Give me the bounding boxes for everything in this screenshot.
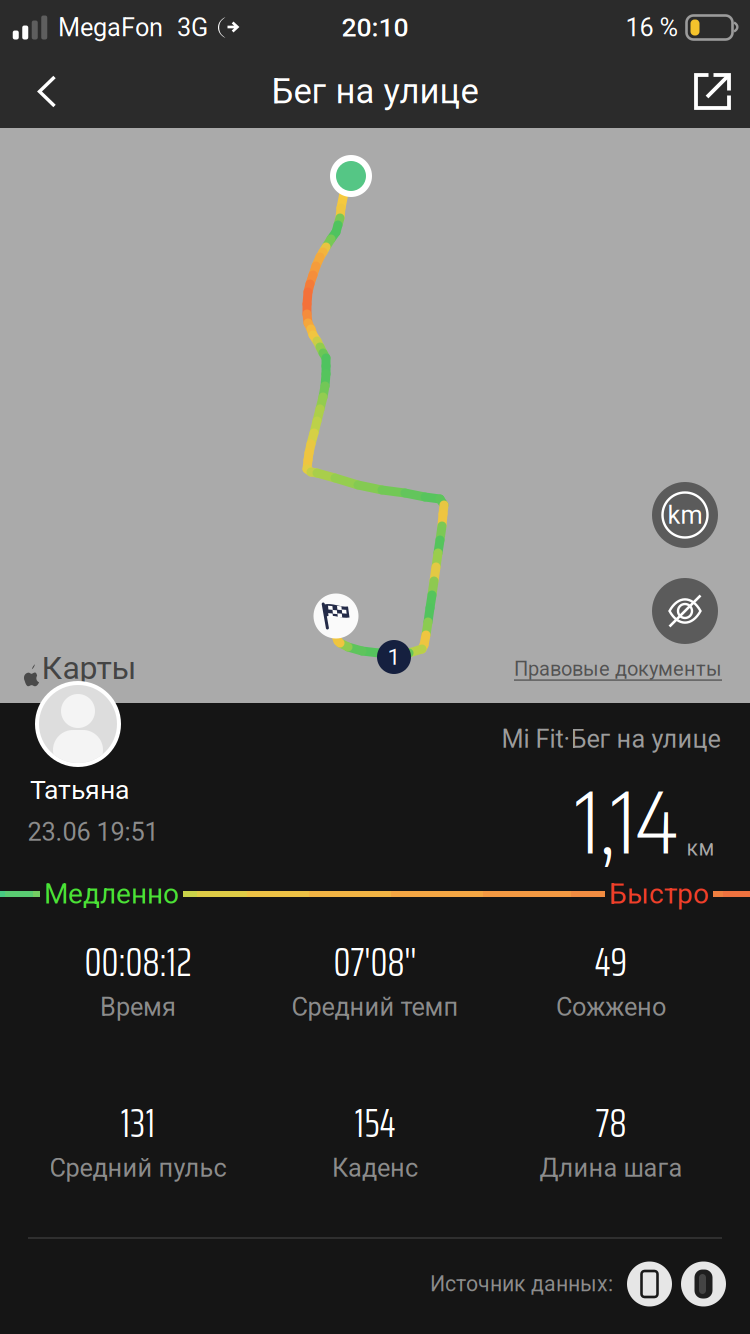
button[interactable]: Back bbox=[19, 55, 75, 128]
staticText: km bbox=[667, 500, 702, 530]
staticText: 23.06 19:51 bbox=[27, 817, 158, 847]
staticText: Mi Fit·Бег на улице bbox=[501, 724, 720, 754]
staticText: Средний темп bbox=[291, 992, 458, 1022]
staticText: 78 bbox=[595, 1091, 626, 1154]
staticText: Сожжено bbox=[556, 992, 666, 1022]
button[interactable]: Hide route bbox=[652, 578, 718, 644]
staticText: км bbox=[686, 836, 714, 861]
staticText: 07'08'' bbox=[333, 930, 416, 993]
staticText: Каденс bbox=[332, 1153, 418, 1183]
staticText: 131 bbox=[120, 1091, 155, 1154]
staticText: Время bbox=[100, 992, 176, 1022]
button[interactable]: Phone data source bbox=[627, 1261, 672, 1306]
staticText: Правовые документы bbox=[514, 657, 722, 681]
staticText: 1 bbox=[387, 644, 400, 670]
staticText: 00:08:12 bbox=[84, 930, 191, 993]
button[interactable]: Switch units bbox=[652, 482, 718, 548]
staticText: Татьяна bbox=[30, 774, 130, 806]
staticText: Карты bbox=[41, 649, 136, 687]
button[interactable]: Share bbox=[680, 55, 745, 128]
staticText: Быстро bbox=[609, 878, 709, 910]
staticText: Источник данных: bbox=[430, 1271, 613, 1296]
staticText: 49 bbox=[594, 930, 627, 993]
staticText: Длина шага bbox=[539, 1153, 682, 1183]
button[interactable]: Band data source bbox=[681, 1261, 726, 1306]
staticText: MegaFon bbox=[58, 13, 163, 42]
staticText: 20:10 bbox=[341, 12, 408, 43]
button[interactable]: Правовые документы bbox=[514, 657, 722, 681]
staticText: Средний пульс bbox=[49, 1153, 226, 1183]
staticText: 3G bbox=[177, 13, 208, 42]
staticText: 154 bbox=[354, 1091, 395, 1154]
staticText: 16 % bbox=[625, 13, 678, 42]
staticText: 1,14 bbox=[575, 768, 677, 872]
staticText: Бег на улице bbox=[271, 71, 478, 112]
staticText: Медленно bbox=[44, 878, 179, 910]
